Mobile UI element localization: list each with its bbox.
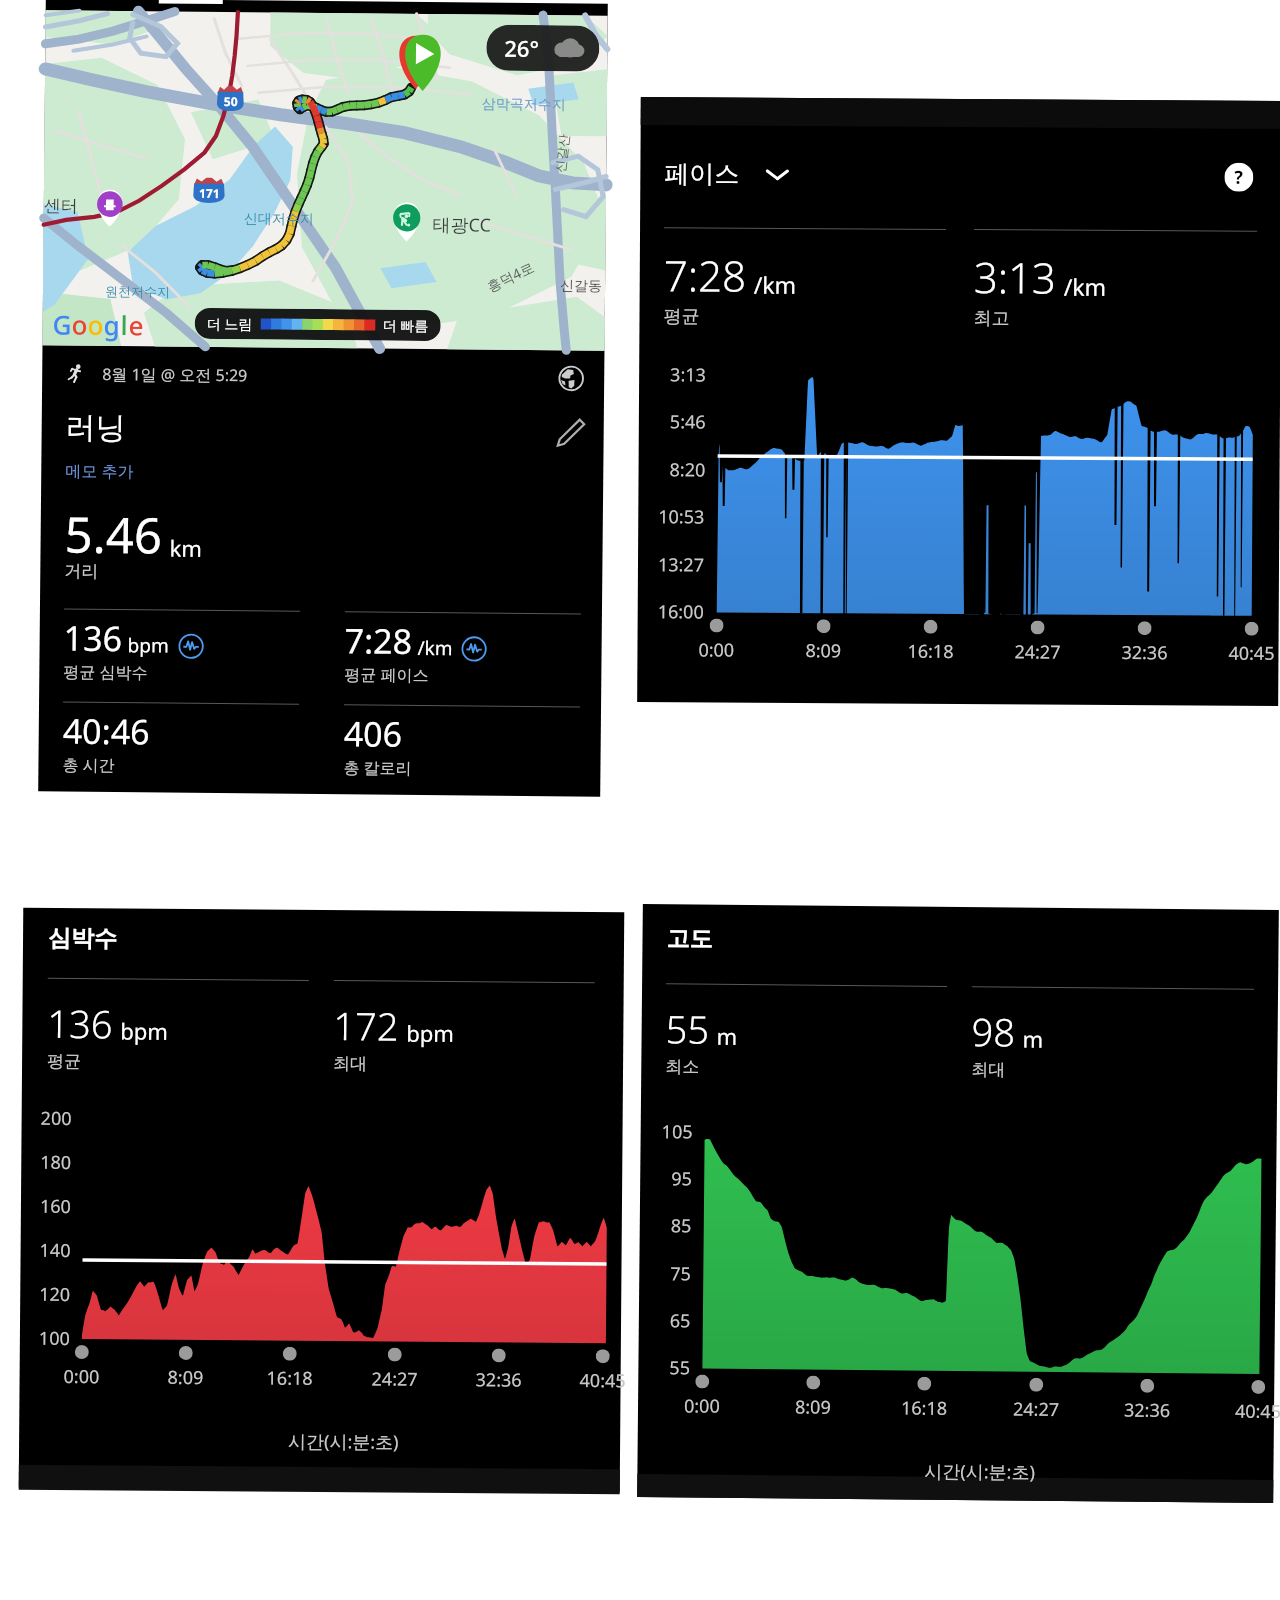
staticText: 센터 <box>44 195 78 217</box>
staticText: 흥덕4로 <box>483 256 538 296</box>
staticText: 총 시간 <box>62 753 116 776</box>
staticText: 171 <box>199 185 220 201</box>
staticText: 160 <box>40 1194 71 1219</box>
staticText: ? <box>1234 165 1243 190</box>
button[interactable]: 40:46 <box>62 701 299 778</box>
staticText: 105 <box>662 1119 693 1144</box>
staticText: 180 <box>40 1150 71 1175</box>
button[interactable]: 172 <box>333 980 595 1076</box>
staticText: 거리 <box>64 560 98 582</box>
staticText: 100 <box>39 1326 70 1351</box>
staticText: o <box>87 307 104 342</box>
staticText: 32:36 <box>1121 640 1169 665</box>
staticText: 16:00 <box>658 599 705 624</box>
staticText: 8:20 <box>669 457 706 482</box>
staticText: 신갈동 <box>560 277 602 296</box>
staticText: 24:27 <box>1013 1396 1060 1422</box>
staticText: 삼막곡저수지 <box>482 95 566 114</box>
staticText: 8:09 <box>167 1365 204 1390</box>
button[interactable]: 136 <box>63 608 300 685</box>
staticText: 32:36 <box>475 1367 523 1393</box>
staticText: 200 <box>40 1106 72 1131</box>
staticText: 총 칼로리 <box>343 756 412 779</box>
staticText: 시간(시:분:초) <box>924 1459 1035 1485</box>
staticText: 7:28 <box>664 246 747 304</box>
staticText: 16:18 <box>907 639 955 664</box>
staticText: 120 <box>39 1282 70 1307</box>
staticText: 심박수 <box>48 924 117 953</box>
staticText: 75 <box>670 1261 691 1286</box>
staticText: 최대 <box>333 1053 367 1074</box>
button[interactable]: 406 <box>343 704 580 780</box>
staticText: 평균 <box>47 1051 81 1072</box>
staticText: 더 빠름 <box>383 316 429 335</box>
staticText: 26° <box>504 33 539 63</box>
staticText: 406 <box>344 710 403 757</box>
staticText: 40:45 <box>579 1368 627 1393</box>
staticText: 3:13 <box>974 248 1057 306</box>
staticText: 8:09 <box>805 638 842 663</box>
staticText: 신갈산 <box>552 133 572 174</box>
staticText: 13:27 <box>658 552 705 577</box>
staticText: 평균 심박수 <box>63 660 148 683</box>
staticText: 136 <box>47 997 114 1049</box>
staticText: 8월 1일 @ 오전 5:29 <box>102 363 248 386</box>
staticText: 40:45 <box>1228 641 1276 666</box>
staticText: 페이스 <box>664 158 739 190</box>
staticText: 최소 <box>665 1056 699 1077</box>
button[interactable]: Edit <box>554 416 587 448</box>
button[interactable]: 26° <box>486 25 599 72</box>
staticText: bpm <box>120 1015 168 1046</box>
staticText: 32:36 <box>1124 1398 1171 1423</box>
staticText: 러닝 <box>65 408 126 447</box>
staticText: 24:27 <box>371 1366 419 1392</box>
staticText: 7:28 <box>344 617 413 664</box>
staticText: 메모 추가 <box>65 459 134 482</box>
staticText: 3:13 <box>670 362 706 387</box>
staticText: 0:00 <box>63 1364 100 1389</box>
button[interactable]: 136 <box>47 978 309 1074</box>
staticText: m <box>1022 1024 1044 1054</box>
button[interactable]: 3:13 <box>973 229 1257 332</box>
staticText: 172 <box>333 999 400 1052</box>
staticText: 0:00 <box>698 637 735 663</box>
staticText: 평균 페이스 <box>344 663 429 686</box>
staticText: 0:00 <box>684 1393 720 1419</box>
staticText: 시간(시:분:초) <box>288 1429 399 1455</box>
button[interactable]: 페이스 <box>664 157 789 190</box>
button[interactable]: 7:28 <box>344 611 581 687</box>
staticText: 55 <box>665 1002 710 1055</box>
staticText: 고도 <box>666 924 713 954</box>
staticText: 8:09 <box>795 1394 831 1420</box>
staticText: l <box>120 307 129 342</box>
staticText: e <box>128 307 144 342</box>
button[interactable]: Help <box>1224 163 1253 192</box>
staticText: 40:45 <box>1235 1399 1280 1424</box>
staticText: 50 <box>224 93 238 109</box>
button[interactable]: 7:28 <box>663 227 946 330</box>
button[interactable]: 메모 추가 <box>65 459 134 482</box>
staticText: 태광CC <box>432 212 492 238</box>
staticText: bpm <box>127 632 170 658</box>
staticText: 55 <box>669 1355 690 1380</box>
staticText: 10:53 <box>658 504 705 529</box>
staticText: o <box>71 307 88 342</box>
staticText: 24:27 <box>1014 639 1062 665</box>
staticText: 16:18 <box>901 1395 948 1421</box>
staticText: 5.46 <box>64 500 163 568</box>
staticText: /km <box>1064 271 1107 302</box>
staticText: 65 <box>670 1308 691 1333</box>
button[interactable]: Map view <box>558 365 584 391</box>
staticText: 85 <box>671 1213 692 1238</box>
staticText: g <box>103 307 121 342</box>
staticText: 140 <box>39 1238 71 1263</box>
button[interactable]: 98 <box>971 986 1254 1083</box>
button[interactable]: 55 <box>665 983 947 1080</box>
staticText: 16:18 <box>266 1366 314 1391</box>
staticText: km <box>169 532 203 563</box>
staticText: 98 <box>971 1005 1016 1057</box>
staticText: bpm <box>406 1018 454 1048</box>
staticText: 원천저수지 <box>105 283 170 299</box>
staticText: G <box>52 306 72 342</box>
staticText: 5:46 <box>670 409 706 434</box>
